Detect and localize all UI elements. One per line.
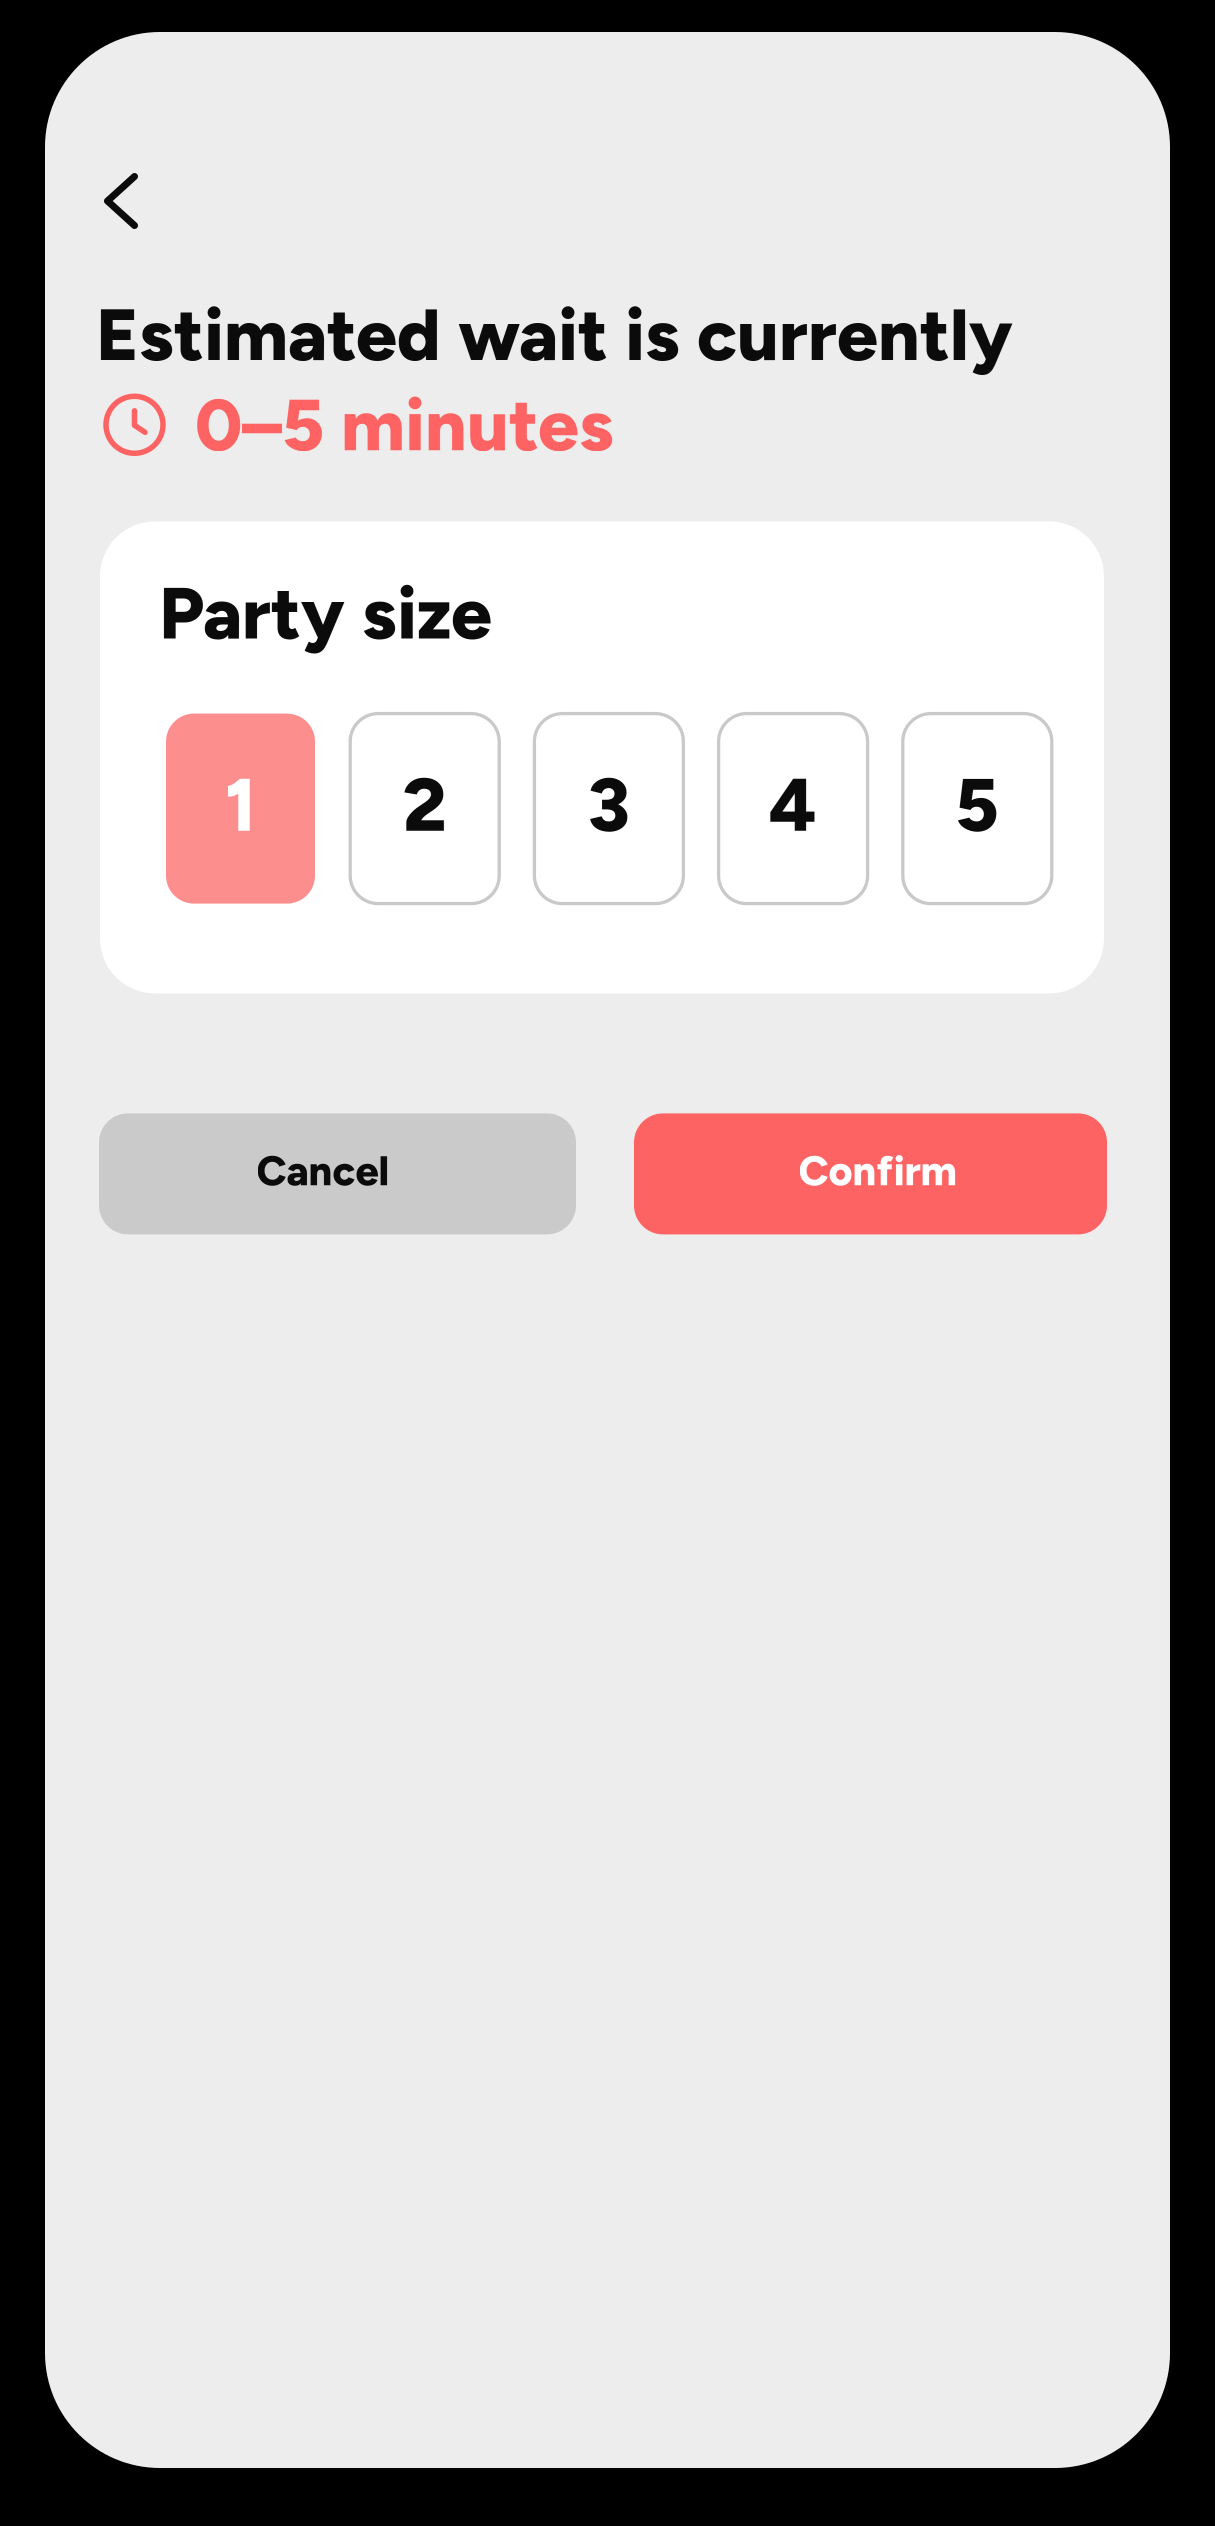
staticText: 0–5 minutes (195, 381, 614, 468)
button[interactable]: 4 (719, 714, 868, 904)
staticText: 2 (403, 760, 447, 849)
staticText: Cancel (256, 1146, 389, 1196)
button[interactable]: 5 (903, 714, 1052, 904)
staticText: 1 (224, 760, 256, 849)
staticText: 3 (588, 760, 630, 849)
staticText: 4 (769, 760, 817, 849)
button[interactable]: Confirm (634, 1113, 1107, 1234)
staticText: Confirm (798, 1146, 956, 1196)
staticText: Party size (159, 569, 492, 657)
staticText: 5 (955, 760, 999, 849)
staticText: Estimated wait is currently (96, 291, 1013, 378)
button[interactable]: 3 (534, 714, 683, 904)
button[interactable]: 1 (166, 714, 315, 904)
button[interactable]: 2 (350, 714, 499, 904)
button[interactable]: Back (45, 32, 166, 245)
button[interactable]: Cancel (99, 1113, 576, 1234)
